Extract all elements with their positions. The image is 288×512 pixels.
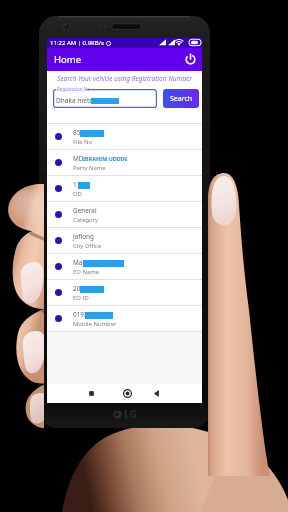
staticText: EO Name: [73, 268, 100, 276]
staticText: Dhaka metro-: [56, 96, 98, 105]
staticText: Category: [73, 216, 99, 224]
staticText: Registration No: [57, 86, 90, 92]
button[interactable]: Registration No: [53, 89, 157, 108]
staticText: 20: [73, 284, 81, 293]
button[interactable]: Back: [149, 386, 164, 401]
staticText: Party Name: [73, 164, 106, 172]
staticText: LG: [124, 407, 137, 421]
button[interactable]: Recents: [84, 386, 99, 401]
staticText: 1: [73, 180, 77, 189]
button[interactable]: Search: [163, 89, 199, 108]
button[interactable]: 20: [47, 280, 202, 305]
button[interactable]: 0195: [47, 306, 202, 331]
button[interactable]: 1: [47, 176, 202, 201]
staticText: Jaflong: [73, 232, 94, 241]
button[interactable]: Home: [120, 386, 135, 401]
button[interactable]: 85: [47, 124, 202, 149]
staticText: Mah: [73, 258, 87, 267]
staticText: EO ID: [73, 294, 89, 302]
staticText: Search Your vehicle using Registration N…: [57, 74, 192, 83]
staticText: IBRAHIM UDDIN: [83, 155, 128, 162]
button[interactable]: General: [47, 202, 202, 227]
staticText: MD.: [73, 154, 85, 163]
staticText: File No: [73, 138, 92, 146]
staticText: Search: [170, 94, 193, 104]
button[interactable]: Jaflong: [47, 228, 202, 253]
staticText: Home: [54, 53, 82, 66]
button[interactable]: Logout: [182, 52, 198, 68]
button[interactable]: MD.: [47, 150, 202, 175]
staticText: 0195: [73, 310, 88, 319]
staticText: 11:22 AM | 0.9KB/s: [50, 39, 104, 47]
staticText: Mobile Number: [73, 320, 117, 328]
button[interactable]: Mah: [47, 254, 202, 279]
staticText: General: [73, 206, 97, 215]
staticText: 85: [73, 128, 81, 137]
staticText: City Office: [73, 242, 102, 250]
staticText: OD: [73, 190, 82, 198]
